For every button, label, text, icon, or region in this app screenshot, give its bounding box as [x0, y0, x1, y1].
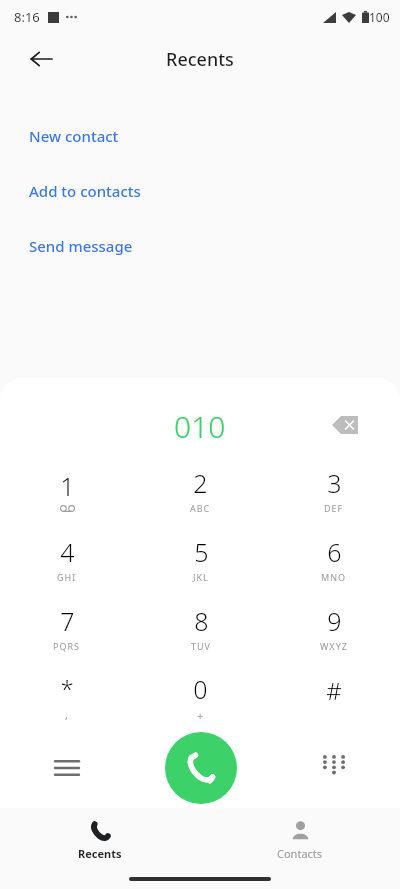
staticText: WXYZ [320, 640, 348, 652]
staticText: 5 [194, 535, 209, 569]
staticText: Recents [166, 47, 234, 72]
button[interactable]: 7 [0, 596, 134, 660]
staticText: 1 [60, 469, 75, 503]
staticText: PQRS [53, 640, 81, 652]
staticText: * [60, 672, 74, 705]
staticText: Add to contacts [29, 181, 141, 201]
staticText: MNO [321, 571, 347, 583]
button[interactable]: Call [165, 732, 237, 804]
button[interactable]: Send message [0, 218, 400, 273]
button[interactable]: Add to contacts [0, 163, 400, 218]
staticText: New contact [29, 126, 119, 146]
button[interactable]: Dialpad [267, 728, 400, 808]
staticText: 3 [327, 466, 342, 500]
button[interactable]: 3 [267, 458, 400, 522]
button[interactable]: 1 [0, 458, 134, 522]
staticText: ABC [190, 502, 211, 514]
button[interactable]: 5 [134, 527, 267, 591]
staticText: DEF [324, 502, 344, 514]
staticText: + [197, 708, 205, 723]
button[interactable]: 0 [134, 665, 267, 729]
button[interactable]: 2 [134, 458, 267, 522]
staticText: 7 [60, 604, 75, 638]
staticText: 8 [194, 604, 209, 638]
staticText: Contacts [277, 846, 323, 861]
staticText: 0 [193, 672, 208, 706]
button[interactable]: New contact [0, 108, 400, 163]
staticText: TUV [191, 640, 211, 652]
staticText: , [65, 707, 69, 722]
button[interactable]: Backspace [321, 401, 369, 449]
button[interactable]: 4 [0, 527, 134, 591]
button[interactable]: # [267, 665, 400, 729]
staticText: 8:16 [14, 8, 40, 26]
staticText: Recents [78, 846, 122, 861]
staticText: GHI [57, 571, 77, 583]
staticText: JKL [193, 571, 209, 583]
staticText: 2 [193, 466, 208, 500]
button[interactable]: 8 [134, 596, 267, 660]
button[interactable]: Back [20, 38, 62, 80]
button[interactable]: 9 [267, 596, 400, 660]
button[interactable]: Call log options [0, 728, 134, 808]
staticText: 010 [174, 406, 226, 447]
button[interactable]: Recents [0, 809, 200, 871]
staticText: 100 [369, 9, 390, 25]
staticText: # [326, 674, 342, 707]
button[interactable]: * [0, 665, 134, 729]
staticText: 9 [327, 604, 342, 638]
staticText: 6 [327, 535, 342, 569]
staticText: Send message [29, 236, 133, 256]
button[interactable]: 6 [267, 527, 400, 591]
button[interactable]: Contacts [200, 809, 400, 871]
staticText: 4 [60, 535, 75, 569]
